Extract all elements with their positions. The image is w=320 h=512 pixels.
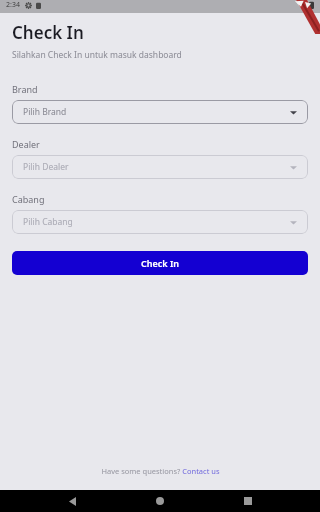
staticText: Check In [141,257,179,269]
button[interactable]: Recent apps [232,490,264,512]
staticText: Cabang [12,193,45,205]
button[interactable]: Pilih Cabang [12,210,308,234]
button[interactable]: Have some questions? Contact us [101,466,220,476]
staticText: 2:34 [6,0,20,10]
button[interactable]: Pilih Brand [12,100,308,124]
staticText: Dealer [12,138,40,150]
button[interactable]: Back [56,490,88,512]
button[interactable]: Check In [12,251,308,275]
staticText: Pilih Brand [23,106,67,118]
staticText: Pilih Cabang [23,216,73,228]
staticText: Brand [12,83,38,95]
staticText: Pilih Dealer [23,161,69,173]
staticText: Check In [12,21,84,44]
staticText: Silahkan Check In untuk masuk dashboard [12,49,182,61]
button[interactable]: Home [144,490,176,512]
button[interactable]: Pilih Dealer [12,155,308,179]
